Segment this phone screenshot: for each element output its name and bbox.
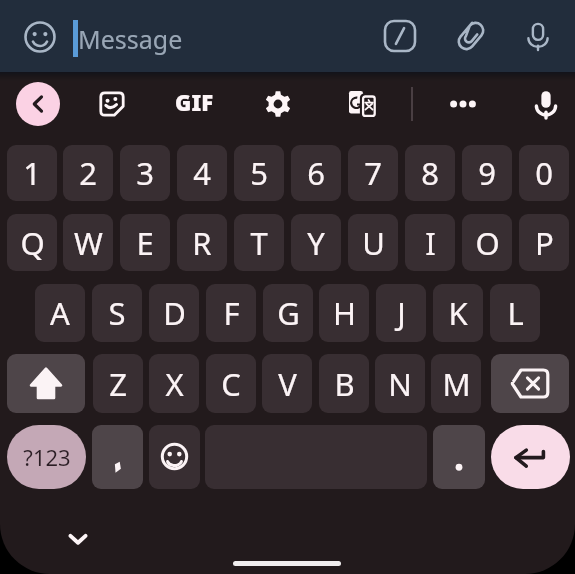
staticText: C bbox=[221, 363, 241, 405]
button[interactable]: 6 bbox=[291, 145, 341, 201]
staticText: W bbox=[74, 222, 103, 264]
staticText: U bbox=[362, 222, 385, 264]
button[interactable]: C bbox=[206, 354, 256, 413]
staticText: P bbox=[535, 222, 554, 264]
button[interactable]: D bbox=[149, 284, 199, 342]
staticText: Q bbox=[20, 222, 45, 264]
button[interactable]: X bbox=[149, 354, 199, 413]
staticText: L bbox=[507, 292, 524, 334]
button[interactable]: N bbox=[375, 354, 425, 413]
button[interactable]: 5 bbox=[234, 145, 284, 201]
button[interactable]: Hide keyboard bbox=[56, 517, 100, 561]
staticText: 0 bbox=[535, 152, 553, 194]
staticText: Z bbox=[109, 363, 127, 405]
button[interactable]: V bbox=[262, 354, 312, 413]
button[interactable]: A bbox=[35, 284, 85, 342]
button[interactable]: Emoji bbox=[149, 425, 200, 489]
staticText: A bbox=[50, 292, 70, 334]
button[interactable]: O bbox=[462, 214, 512, 271]
staticText: Y bbox=[307, 222, 325, 264]
button[interactable]: 3 bbox=[120, 145, 170, 201]
staticText: X bbox=[165, 363, 184, 405]
staticText: I bbox=[425, 222, 436, 264]
staticText: 3 bbox=[136, 152, 154, 194]
button[interactable]: M bbox=[431, 354, 481, 413]
staticText: K bbox=[448, 292, 468, 334]
button[interactable]: T bbox=[234, 214, 284, 271]
button[interactable]: GIF bbox=[172, 82, 216, 126]
button[interactable]: Period bbox=[433, 425, 485, 489]
staticText: T bbox=[250, 222, 268, 264]
button[interactable]: F bbox=[206, 284, 256, 342]
staticText: 8 bbox=[421, 152, 439, 194]
button[interactable]: Enter bbox=[491, 425, 570, 489]
button[interactable]: Y bbox=[291, 214, 341, 271]
button[interactable]: 1 bbox=[7, 145, 57, 201]
button[interactable]: 4 bbox=[177, 145, 227, 201]
staticText: F bbox=[223, 292, 240, 334]
button[interactable]: B bbox=[319, 354, 369, 413]
staticText: 4 bbox=[193, 152, 211, 194]
button[interactable]: 9 bbox=[462, 145, 512, 201]
staticText: 6 bbox=[307, 152, 325, 194]
button[interactable]: 2 bbox=[63, 145, 113, 201]
staticText: V bbox=[278, 363, 297, 405]
staticText: N bbox=[388, 363, 412, 405]
staticText: O bbox=[475, 222, 500, 264]
button[interactable]: Voice input bbox=[516, 14, 560, 58]
button[interactable]: Z bbox=[93, 354, 143, 413]
button[interactable]: R bbox=[177, 214, 227, 271]
staticText: M bbox=[442, 363, 471, 405]
button[interactable]: S bbox=[92, 284, 142, 342]
button[interactable]: K bbox=[433, 284, 483, 342]
button[interactable]: Back bbox=[16, 82, 60, 126]
staticText: E bbox=[136, 222, 154, 264]
button[interactable]: E bbox=[120, 214, 170, 271]
staticText: 1 bbox=[23, 152, 41, 194]
staticText: S bbox=[108, 292, 126, 334]
button[interactable]: 8 bbox=[405, 145, 455, 201]
button[interactable]: G bbox=[263, 284, 313, 342]
staticText: Message bbox=[78, 22, 183, 56]
staticText: J bbox=[397, 292, 406, 334]
staticText: 2 bbox=[79, 152, 97, 194]
button[interactable]: 7 bbox=[348, 145, 398, 201]
button[interactable]: Backspace bbox=[491, 354, 569, 413]
button[interactable]: ?123 bbox=[7, 425, 86, 489]
staticText: 7 bbox=[364, 152, 382, 194]
staticText: G bbox=[277, 292, 300, 334]
button[interactable]: Attach bbox=[449, 14, 493, 58]
button[interactable]: P bbox=[519, 214, 569, 271]
staticText: D bbox=[163, 292, 186, 334]
button[interactable]: U bbox=[348, 214, 398, 271]
button[interactable]: Stickers bbox=[90, 82, 134, 126]
button[interactable]: Translate bbox=[340, 82, 384, 126]
staticText: H bbox=[333, 292, 356, 334]
staticText: GIF bbox=[175, 87, 214, 117]
button[interactable]: 0 bbox=[519, 145, 569, 201]
button[interactable]: Settings bbox=[256, 82, 300, 126]
button[interactable]: H bbox=[319, 284, 369, 342]
staticText: ?123 bbox=[23, 442, 71, 472]
button[interactable]: Shift bbox=[7, 354, 85, 413]
button[interactable]: Comma bbox=[92, 425, 143, 489]
button[interactable]: Slash command bbox=[378, 14, 422, 58]
staticText: 5 bbox=[250, 152, 268, 194]
button[interactable]: L bbox=[490, 284, 540, 342]
button[interactable]: More options bbox=[441, 82, 485, 126]
staticText: 9 bbox=[478, 152, 496, 194]
staticText: R bbox=[192, 222, 212, 264]
button[interactable]: J bbox=[376, 284, 426, 342]
button[interactable]: W bbox=[63, 214, 113, 271]
button[interactable]: Voice typing bbox=[524, 82, 568, 126]
button[interactable]: I bbox=[405, 214, 455, 271]
button[interactable]: Q bbox=[7, 214, 57, 271]
staticText: B bbox=[334, 363, 355, 405]
button[interactable]: Emoji bbox=[18, 15, 62, 59]
